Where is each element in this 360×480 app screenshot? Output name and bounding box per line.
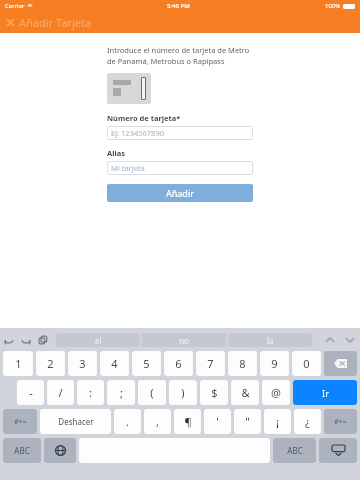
staticText: 1: [15, 356, 22, 371]
staticText: 5:46 PM: [167, 2, 190, 10]
staticText: 8: [239, 356, 246, 371]
staticText: Introduce el número de tarjeta de Metro …: [107, 45, 253, 66]
staticText: Número de tarjeta*: [107, 113, 181, 123]
button[interactable]: 2: [36, 351, 65, 376]
button[interactable]: ABC: [3, 438, 41, 463]
staticText: 6: [175, 356, 182, 371]
staticText: ,: [156, 414, 159, 429]
staticText: Añadir Tarjeta: [19, 15, 92, 30]
staticText: #+=: [14, 417, 27, 427]
button[interactable]: Mi tarjeta: [107, 161, 253, 175]
staticText: 5: [143, 356, 150, 371]
staticText: :: [89, 385, 92, 400]
staticText: ": [245, 414, 250, 429]
button[interactable]: 1: [3, 351, 33, 376]
button[interactable]: ,: [144, 409, 171, 434]
button[interactable]: Siguiente: [344, 334, 356, 346]
button[interactable]: la: [228, 333, 312, 347]
staticText: Mi tarjeta: [111, 163, 145, 173]
staticText: el: [95, 335, 102, 346]
button[interactable]: 5: [132, 351, 161, 376]
staticText: .: [126, 414, 129, 429]
button[interactable]: 3: [68, 351, 97, 376]
staticText: Añadir: [166, 187, 194, 199]
button[interactable]: .: [114, 409, 141, 434]
button[interactable]: 7: [196, 351, 225, 376]
staticText: &: [241, 385, 250, 400]
staticText: 9: [271, 356, 278, 371]
button[interactable]: ABC: [273, 438, 316, 463]
button[interactable]: -: [17, 380, 44, 405]
button[interactable]: Ir: [293, 380, 357, 405]
staticText: ): [181, 385, 185, 400]
button[interactable]: Deshacer: [40, 409, 111, 434]
button[interactable]: Ej: 1234567890: [107, 126, 253, 140]
button[interactable]: ¡: [264, 409, 291, 434]
button[interactable]: &: [231, 380, 259, 405]
button[interactable]: /: [47, 380, 74, 405]
button[interactable]: Anterior: [324, 334, 336, 346]
staticText: Ej: 1234567890: [111, 128, 164, 138]
staticText: 100%: [325, 2, 341, 10]
staticText: ABC: [14, 445, 30, 456]
button[interactable]: 9: [260, 351, 289, 376]
button[interactable]: 6: [164, 351, 193, 376]
button[interactable]: Cerrar: [6, 12, 92, 33]
staticText: no: [179, 335, 189, 346]
staticText: ;: [120, 385, 123, 400]
staticText: (: [150, 385, 154, 400]
button[interactable]: Deshacer: [4, 335, 14, 345]
staticText: 3: [79, 356, 86, 371]
button[interactable]: (: [138, 380, 166, 405]
staticText: Carrier: [5, 2, 25, 10]
button[interactable]: no: [142, 333, 226, 347]
staticText: ': [216, 414, 219, 429]
staticText: 0: [303, 356, 310, 371]
button[interactable]: 0: [292, 351, 321, 376]
staticText: Ir: [322, 387, 329, 399]
button[interactable]: ": [234, 409, 261, 434]
button[interactable]: Ocultar teclado: [319, 438, 357, 463]
staticText: ¡: [276, 414, 279, 429]
button[interactable]: ¶: [174, 409, 201, 434]
button[interactable]: Añadir: [107, 184, 253, 202]
button[interactable]: 4: [100, 351, 129, 376]
button[interactable]: #+=: [3, 409, 37, 434]
button[interactable]: ): [169, 380, 197, 405]
staticText: 2: [47, 356, 54, 371]
staticText: 4: [111, 356, 118, 371]
staticText: ABC: [287, 445, 303, 456]
button[interactable]: @: [262, 380, 290, 405]
button[interactable]: 8: [228, 351, 257, 376]
staticText: 7: [207, 356, 214, 371]
staticText: ¶: [184, 414, 192, 429]
button[interactable]: Rehacer: [21, 335, 31, 345]
staticText: $: [211, 385, 218, 400]
staticText: ¿: [305, 414, 310, 429]
button[interactable]: $: [200, 380, 228, 405]
button[interactable]: :: [77, 380, 104, 405]
staticText: Deshacer: [58, 416, 94, 427]
button[interactable]: Borrar: [324, 351, 357, 376]
button[interactable]: ;: [107, 380, 135, 405]
staticText: @: [271, 385, 281, 400]
button[interactable]: #+=: [324, 409, 357, 434]
staticText: /: [58, 385, 63, 400]
staticText: Alias: [107, 148, 125, 158]
button[interactable]: ': [204, 409, 231, 434]
button[interactable]: ¿: [294, 409, 321, 434]
button[interactable]: Cambiar idioma: [44, 438, 76, 463]
staticText: la: [267, 335, 274, 346]
staticText: #+=: [334, 417, 347, 427]
button[interactable]: el: [56, 333, 140, 347]
staticText: -: [29, 385, 33, 400]
button[interactable]: Copiar: [38, 335, 48, 345]
